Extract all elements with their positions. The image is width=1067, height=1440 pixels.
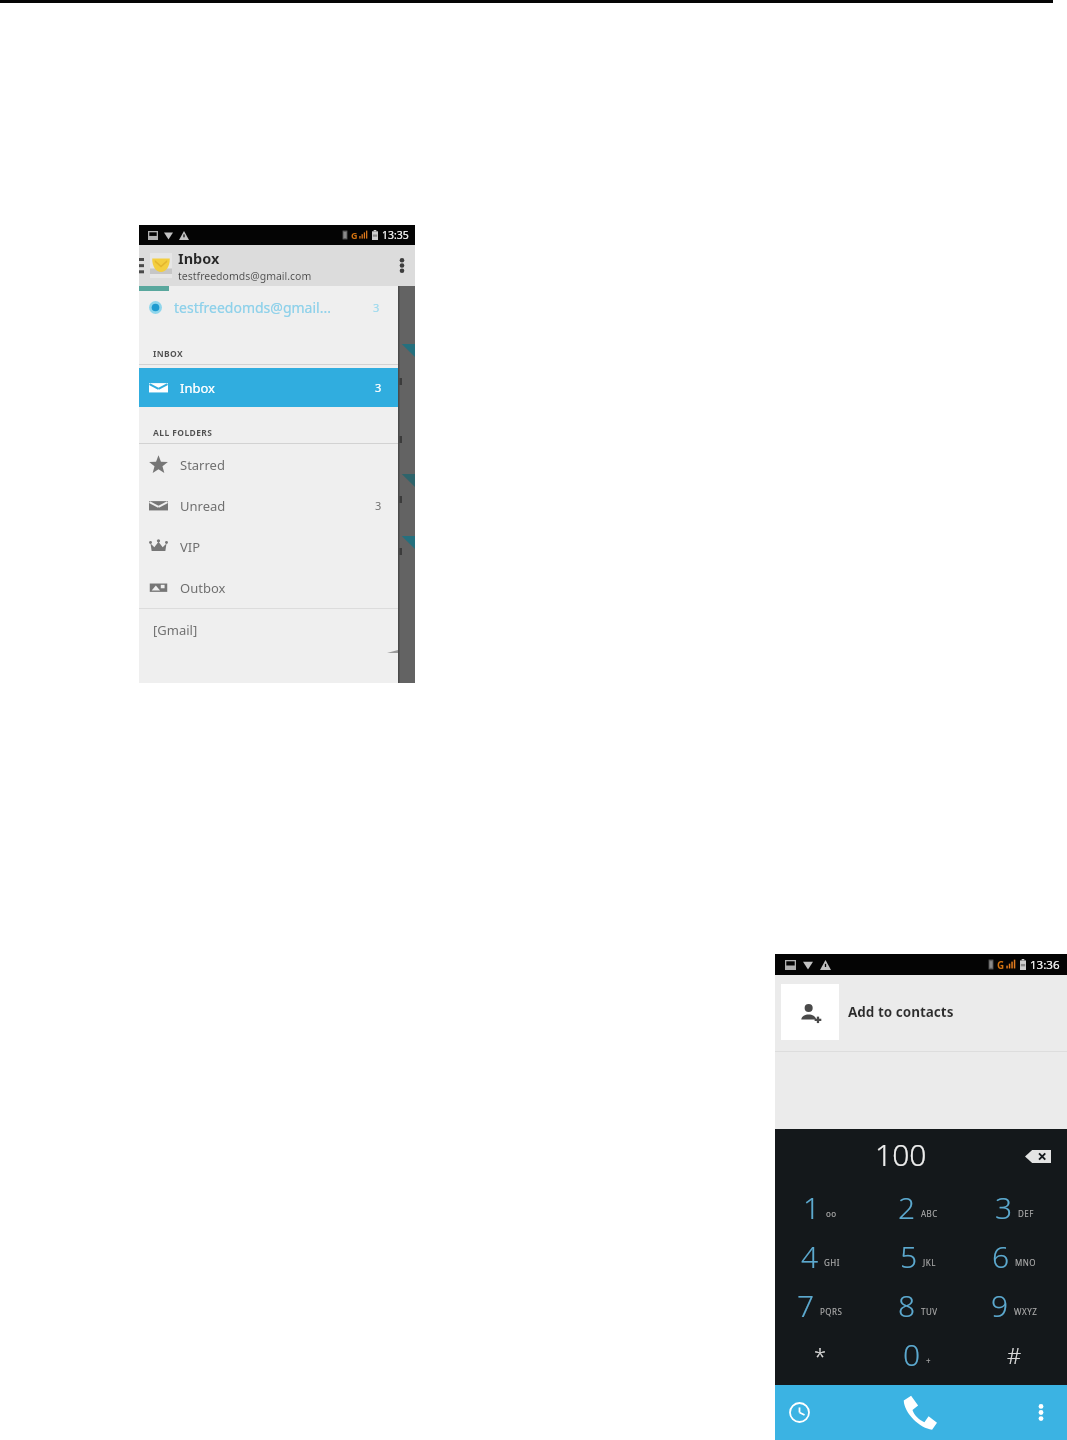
staticText: DEF: [1018, 1208, 1034, 1219]
staticText: oo: [826, 1208, 837, 1219]
staticText: 3: [375, 498, 382, 513]
staticText: testfreedomds@gmail.com: [178, 269, 312, 283]
button[interactable]: 4: [775, 1232, 873, 1281]
staticText: ABC: [921, 1208, 938, 1219]
button[interactable]: 2: [873, 1183, 970, 1232]
staticText: JKL: [923, 1257, 936, 1268]
staticText: 0: [903, 1334, 921, 1375]
button[interactable]: 9: [970, 1281, 1067, 1330]
staticText: Unread: [180, 497, 226, 515]
staticText: 6: [992, 1236, 1010, 1277]
button[interactable]: [Gmail]: [139, 609, 398, 650]
staticText: ALL FOLDERS: [153, 427, 213, 439]
staticText: 3: [375, 380, 382, 395]
staticText: 100: [875, 1134, 927, 1175]
staticText: 13:36: [1030, 957, 1060, 973]
button[interactable]: Add to contacts: [775, 984, 1067, 1040]
staticText: 7: [797, 1285, 815, 1326]
button[interactable]: *: [775, 1330, 873, 1379]
staticText: 4: [801, 1236, 819, 1277]
button[interactable]: Call history: [775, 1385, 823, 1440]
button[interactable]: More options: [389, 245, 415, 286]
staticText: 9: [991, 1285, 1009, 1326]
button[interactable]: #: [970, 1330, 1067, 1379]
button[interactable]: testfreedomds@gmail...: [139, 291, 398, 323]
button[interactable]: 7: [775, 1281, 873, 1330]
staticText: G: [997, 958, 1005, 971]
staticText: Inbox: [178, 248, 220, 268]
button[interactable]: More options: [1015, 1385, 1067, 1440]
staticText: #: [1007, 1340, 1022, 1370]
staticText: 8: [898, 1285, 916, 1326]
staticText: +: [926, 1355, 932, 1366]
button[interactable]: Call: [823, 1385, 1015, 1440]
staticText: Outbox: [180, 579, 226, 597]
button[interactable]: 5: [873, 1232, 970, 1281]
button[interactable]: VIP: [139, 526, 398, 567]
button[interactable]: Backspace: [1021, 1139, 1055, 1173]
staticText: G: [351, 229, 358, 241]
button[interactable]: 0: [873, 1330, 970, 1379]
button[interactable]: Unread: [139, 485, 398, 526]
staticText: Add to contacts: [848, 1003, 954, 1021]
staticText: *: [814, 1340, 827, 1370]
button[interactable]: Inbox: [139, 368, 398, 407]
button[interactable]: Outbox: [139, 567, 398, 608]
staticText: TUV: [921, 1306, 938, 1317]
staticText: Starred: [180, 456, 225, 474]
staticText: INBOX: [153, 348, 184, 360]
staticText: 1: [803, 1187, 821, 1228]
button[interactable]: 3: [970, 1183, 1067, 1232]
staticText: MNO: [1015, 1257, 1037, 1268]
button[interactable]: 8: [873, 1281, 970, 1330]
staticText: 5: [900, 1236, 918, 1277]
staticText: 3: [373, 300, 380, 315]
staticText: 2: [898, 1187, 916, 1228]
staticText: GHI: [824, 1257, 840, 1268]
staticText: WXYZ: [1014, 1306, 1038, 1317]
button[interactable]: 6: [970, 1232, 1067, 1281]
staticText: VIP: [180, 538, 201, 556]
staticText: PQRS: [820, 1306, 843, 1317]
button[interactable]: Starred: [139, 444, 398, 485]
staticText: [Gmail]: [153, 621, 198, 639]
button[interactable]: 1: [775, 1183, 873, 1232]
staticText: Inbox: [180, 379, 215, 397]
staticText: testfreedomds@gmail...: [174, 298, 331, 317]
staticText: 13:35: [382, 228, 409, 242]
staticText: 3: [995, 1187, 1013, 1228]
